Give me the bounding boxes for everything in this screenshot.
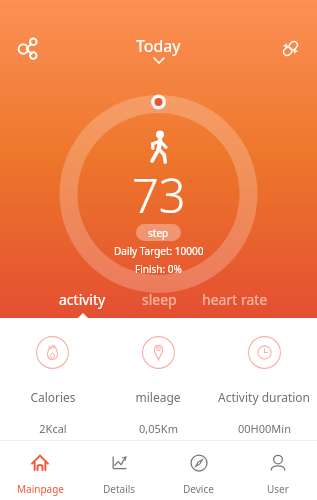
button[interactable]: step	[136, 224, 181, 241]
staticText: activity	[59, 290, 106, 309]
button[interactable]: Connect device	[263, 20, 317, 76]
button[interactable]: Details	[80, 441, 159, 500]
button[interactable]: mileage	[105, 336, 211, 436]
staticText: Mainpage	[17, 482, 64, 496]
staticText: 00H00Min	[238, 421, 291, 436]
staticText: Daily Target: 10000	[114, 244, 204, 258]
staticText: Device	[183, 482, 214, 496]
staticText: Today	[136, 35, 181, 57]
staticText: heart rate	[202, 290, 268, 309]
button[interactable]: sleep	[121, 290, 197, 318]
button[interactable]: Share	[0, 20, 54, 76]
staticText: sleep	[142, 290, 177, 309]
button[interactable]: Activity duration	[211, 336, 317, 436]
staticText: Calories	[30, 389, 76, 405]
staticText: Activity duration	[218, 389, 310, 405]
staticText: step	[148, 226, 169, 240]
staticText: 2Kcal	[39, 421, 67, 436]
staticText: 73	[132, 163, 186, 227]
staticText: User	[267, 482, 289, 496]
button[interactable]: Calories	[0, 336, 105, 436]
staticText: Details	[103, 482, 136, 496]
button[interactable]: activity	[44, 290, 121, 318]
button[interactable]: heart rate	[197, 290, 273, 318]
button[interactable]: Mainpage	[0, 441, 80, 500]
button[interactable]: Device	[159, 441, 238, 500]
staticText: 0,05Km	[139, 421, 178, 436]
button[interactable]: Today	[136, 33, 181, 63]
staticText: mileage	[135, 389, 181, 405]
staticText: Finish: 0%	[135, 262, 182, 276]
button[interactable]: User	[238, 441, 317, 500]
